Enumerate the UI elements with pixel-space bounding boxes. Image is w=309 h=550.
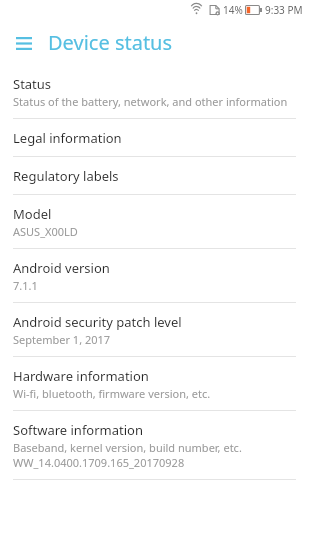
staticText: Status of the battery, network, and othe… xyxy=(13,94,288,109)
staticText: 14% xyxy=(223,3,243,17)
button[interactable]: Android security patch level xyxy=(0,303,309,356)
staticText: Hardware information xyxy=(13,367,149,385)
staticText: Wi-fi, bluetooth, firmware version, etc. xyxy=(13,386,211,401)
staticText: Device status xyxy=(48,29,173,56)
staticText: Android version xyxy=(13,259,110,277)
button[interactable]: Software information xyxy=(0,411,309,479)
button[interactable]: Open navigation menu xyxy=(8,27,40,59)
staticText: Model xyxy=(13,205,52,223)
staticText: WW_14.0400.1709.165_20170928 xyxy=(13,455,185,470)
staticText: Android security patch level xyxy=(13,313,182,331)
staticText: Baseband, kernel version, build number, … xyxy=(13,440,242,455)
button[interactable]: Status xyxy=(0,65,309,118)
staticText: ASUS_X00LD xyxy=(13,224,78,239)
button[interactable]: Legal information xyxy=(0,119,309,156)
button[interactable]: Model xyxy=(0,195,309,248)
staticText: September 1, 2017 xyxy=(13,332,111,347)
button[interactable]: Android version xyxy=(0,249,309,302)
staticText: Legal information xyxy=(13,129,122,147)
button[interactable]: Regulatory labels xyxy=(0,157,309,194)
staticText: 7.1.1 xyxy=(13,278,38,293)
staticText: Software information xyxy=(13,421,143,439)
staticText: 9:33 PM xyxy=(265,3,303,17)
staticText: Regulatory labels xyxy=(13,167,119,185)
staticText: Status xyxy=(13,75,52,93)
button[interactable]: Hardware information xyxy=(0,357,309,410)
